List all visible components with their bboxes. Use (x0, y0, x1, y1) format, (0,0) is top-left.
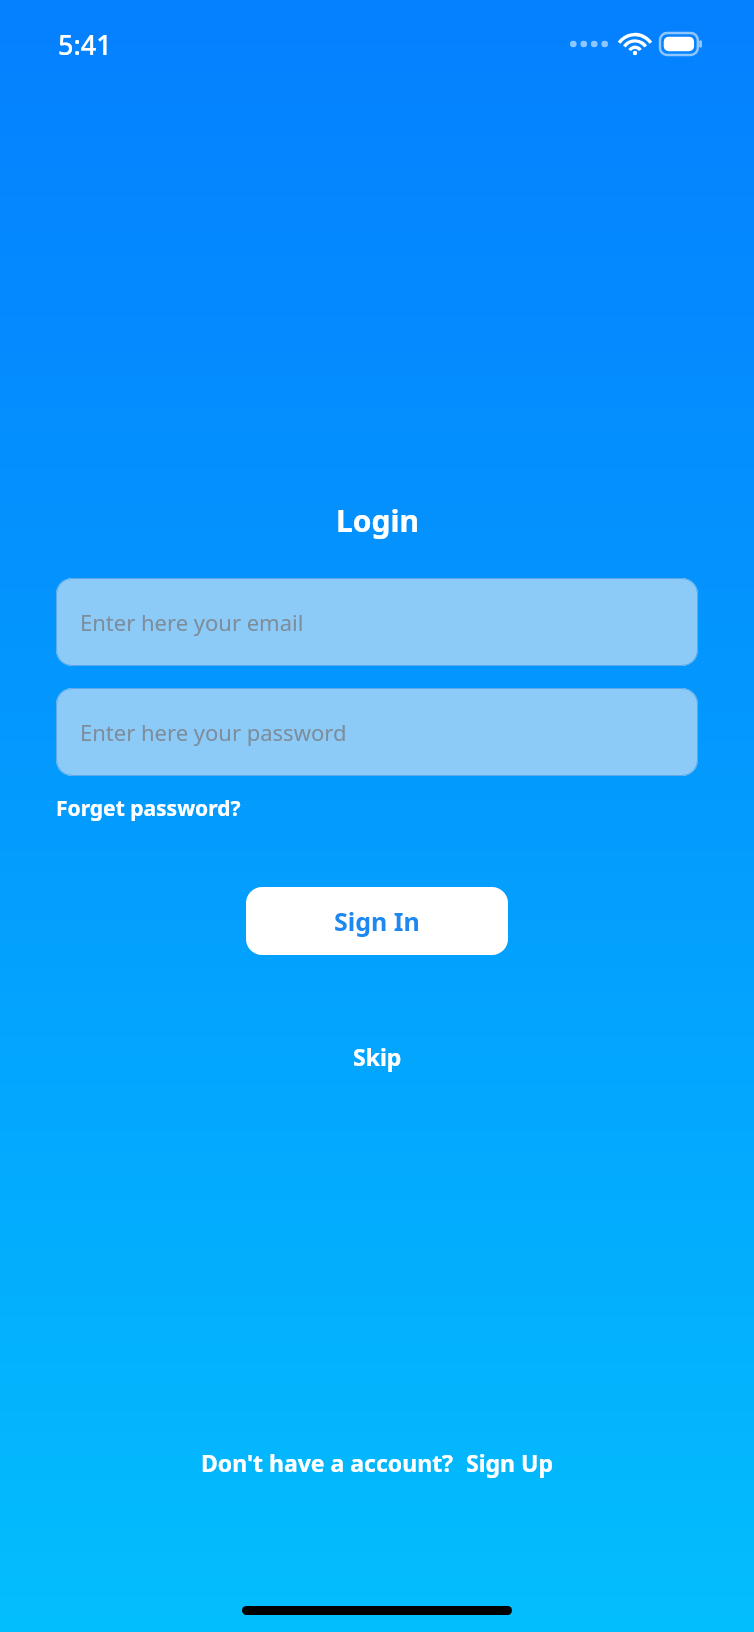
staticText: Skip (353, 1041, 402, 1072)
button[interactable]: Forget password? (56, 794, 241, 823)
staticText: Don't have a account? (201, 1447, 454, 1478)
button[interactable]: Enter here your email (56, 578, 698, 666)
staticText: Sign In (334, 904, 420, 938)
button[interactable]: Don't have a account? (195, 1443, 559, 1482)
staticText: Forget password? (56, 794, 241, 823)
staticText: Login (336, 500, 419, 541)
button[interactable]: Enter here your password (56, 688, 698, 776)
staticText: 5:41 (58, 26, 112, 63)
staticText: Sign Up (466, 1447, 553, 1478)
staticText: Enter here your password (80, 717, 347, 747)
button[interactable]: Skip (339, 1037, 416, 1076)
staticText: Enter here your email (80, 607, 304, 637)
button[interactable]: Sign In (246, 887, 508, 955)
